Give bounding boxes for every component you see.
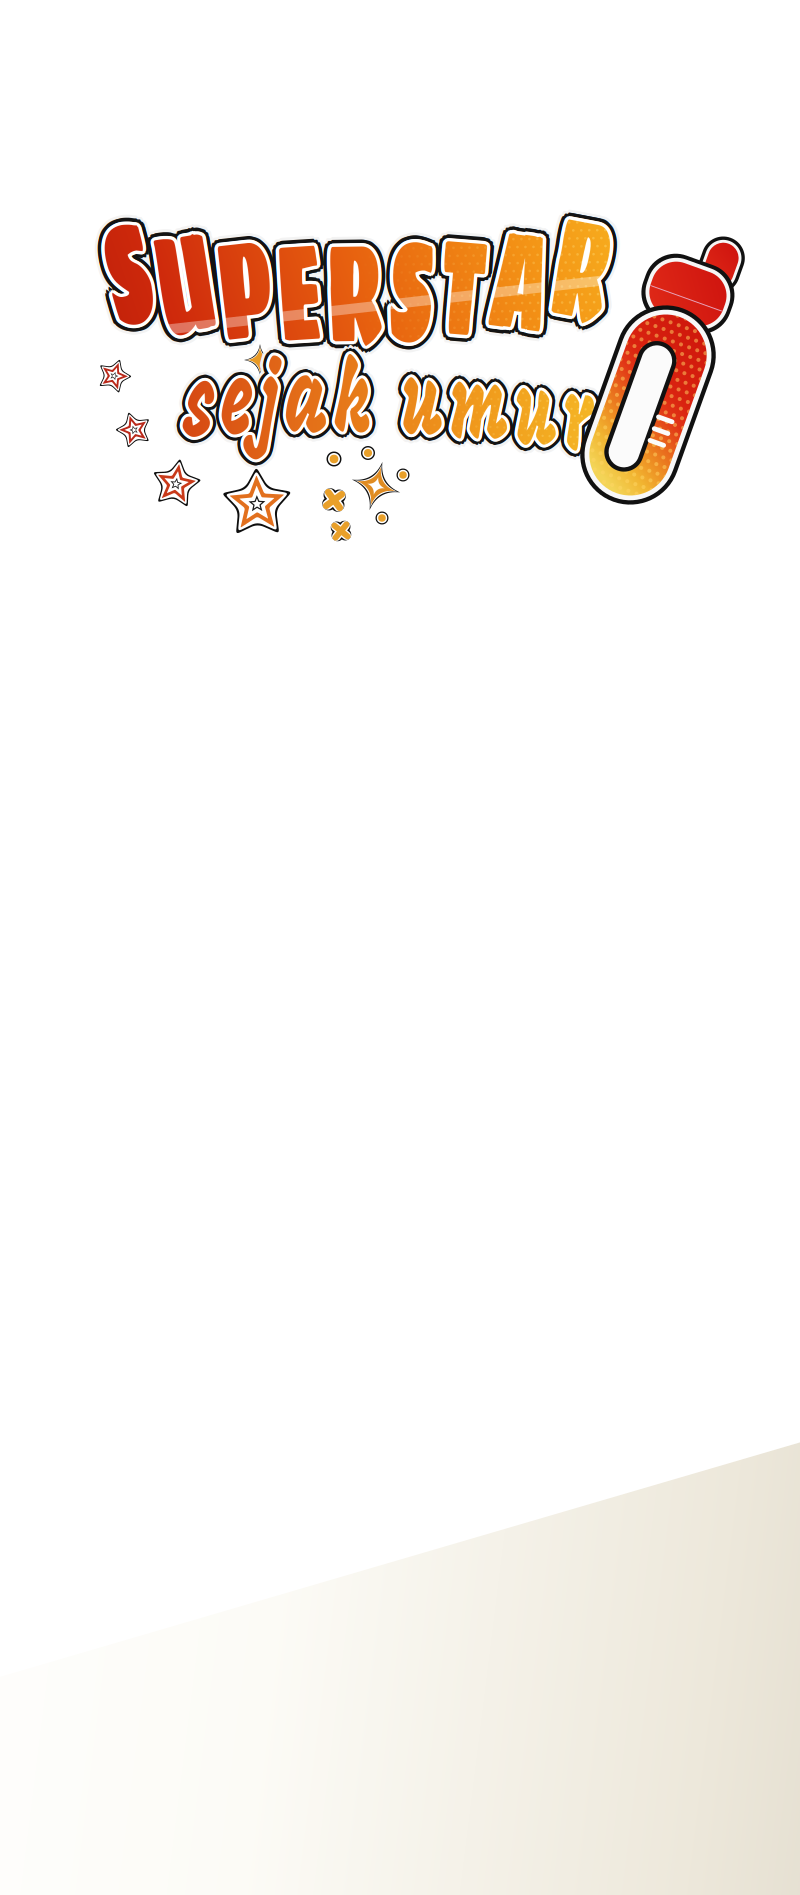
staticText: P bbox=[210, 199, 291, 357]
staticText: S bbox=[95, 188, 164, 346]
staticText: R bbox=[550, 187, 634, 345]
staticText: S bbox=[379, 209, 448, 366]
staticText: S bbox=[94, 201, 163, 359]
staticText: a bbox=[279, 374, 333, 451]
staticText: u bbox=[518, 380, 571, 458]
staticText: A bbox=[476, 212, 564, 370]
staticText: u bbox=[516, 373, 569, 450]
staticText bbox=[374, 368, 395, 445]
staticText: P bbox=[205, 198, 286, 355]
staticText: j bbox=[258, 383, 282, 460]
staticText bbox=[374, 364, 395, 441]
staticText: S bbox=[90, 197, 159, 355]
staticText: m bbox=[447, 377, 520, 454]
staticText: u bbox=[394, 368, 447, 445]
staticText: m bbox=[446, 373, 519, 451]
staticText: R bbox=[310, 215, 394, 372]
staticText: m bbox=[450, 372, 523, 449]
staticText: P bbox=[203, 205, 284, 362]
staticText: S bbox=[91, 190, 160, 347]
staticText: k bbox=[328, 368, 375, 445]
staticText: s bbox=[184, 372, 223, 450]
staticText: S bbox=[373, 218, 442, 375]
staticText: R bbox=[313, 210, 397, 367]
staticText: r bbox=[555, 377, 595, 454]
staticText: R bbox=[541, 196, 625, 353]
staticText: k bbox=[326, 378, 373, 455]
staticText: U bbox=[147, 192, 232, 349]
staticText: u bbox=[398, 372, 451, 450]
staticText: R bbox=[538, 191, 622, 348]
staticText: S bbox=[379, 215, 448, 372]
staticText: k bbox=[336, 373, 383, 450]
staticText: j bbox=[252, 377, 276, 454]
staticText: A bbox=[476, 199, 564, 356]
staticText: k bbox=[321, 370, 368, 447]
staticText: R bbox=[317, 207, 401, 364]
staticText: S bbox=[374, 210, 443, 368]
staticText bbox=[370, 369, 391, 447]
staticText: U bbox=[149, 201, 234, 358]
staticText: A bbox=[473, 202, 561, 360]
staticText: u bbox=[405, 365, 458, 442]
staticText: j bbox=[263, 371, 287, 448]
staticText: u bbox=[520, 376, 573, 453]
staticText bbox=[374, 371, 395, 448]
staticText: u bbox=[515, 384, 568, 461]
staticText: E bbox=[275, 207, 342, 364]
staticText: k bbox=[333, 375, 380, 452]
staticText: r bbox=[563, 382, 603, 459]
staticText: S bbox=[101, 191, 170, 349]
staticText: R bbox=[318, 205, 402, 362]
staticText: u bbox=[509, 378, 562, 456]
staticText: A bbox=[476, 195, 564, 353]
staticText: k bbox=[327, 375, 374, 452]
staticText: R bbox=[316, 213, 400, 371]
staticText: U bbox=[136, 197, 221, 355]
staticText: E bbox=[275, 217, 342, 374]
staticText: E bbox=[266, 222, 333, 379]
staticText: U bbox=[151, 206, 236, 363]
staticText: S bbox=[372, 203, 441, 361]
staticText: k bbox=[338, 365, 385, 442]
staticText bbox=[381, 377, 402, 455]
staticText: U bbox=[142, 204, 227, 361]
staticText: r bbox=[565, 388, 605, 465]
staticText bbox=[383, 369, 404, 447]
staticText: a bbox=[282, 369, 336, 446]
staticText: a bbox=[271, 371, 325, 449]
staticText: r bbox=[556, 372, 596, 449]
staticText: s bbox=[180, 386, 219, 464]
staticText: U bbox=[142, 194, 227, 351]
staticText: T bbox=[423, 217, 492, 375]
staticText: m bbox=[446, 370, 519, 448]
staticText: A bbox=[485, 207, 573, 365]
staticText: s bbox=[180, 377, 219, 454]
staticText: k bbox=[329, 367, 376, 444]
staticText: s bbox=[177, 375, 216, 452]
staticText: T bbox=[433, 217, 502, 375]
staticText: E bbox=[261, 203, 328, 360]
staticText: S bbox=[385, 207, 454, 364]
staticText: u bbox=[507, 370, 560, 448]
staticText: e bbox=[214, 371, 254, 448]
staticText: m bbox=[448, 364, 521, 441]
staticText: m bbox=[445, 374, 518, 452]
staticText: u bbox=[395, 367, 448, 444]
staticText: m bbox=[438, 375, 511, 452]
staticText: r bbox=[566, 383, 606, 461]
staticText: R bbox=[322, 218, 406, 376]
staticText: U bbox=[142, 197, 227, 355]
staticText: P bbox=[199, 212, 280, 369]
staticText: E bbox=[272, 215, 339, 373]
staticText: S bbox=[102, 196, 171, 354]
staticText: u bbox=[508, 374, 561, 452]
staticText bbox=[378, 367, 399, 444]
staticText: P bbox=[195, 208, 276, 365]
staticText: e bbox=[211, 376, 251, 454]
staticText: k bbox=[332, 367, 379, 444]
staticText: R bbox=[544, 191, 628, 348]
staticText: T bbox=[422, 212, 491, 369]
staticText: S bbox=[377, 216, 446, 373]
staticText: E bbox=[261, 221, 328, 378]
